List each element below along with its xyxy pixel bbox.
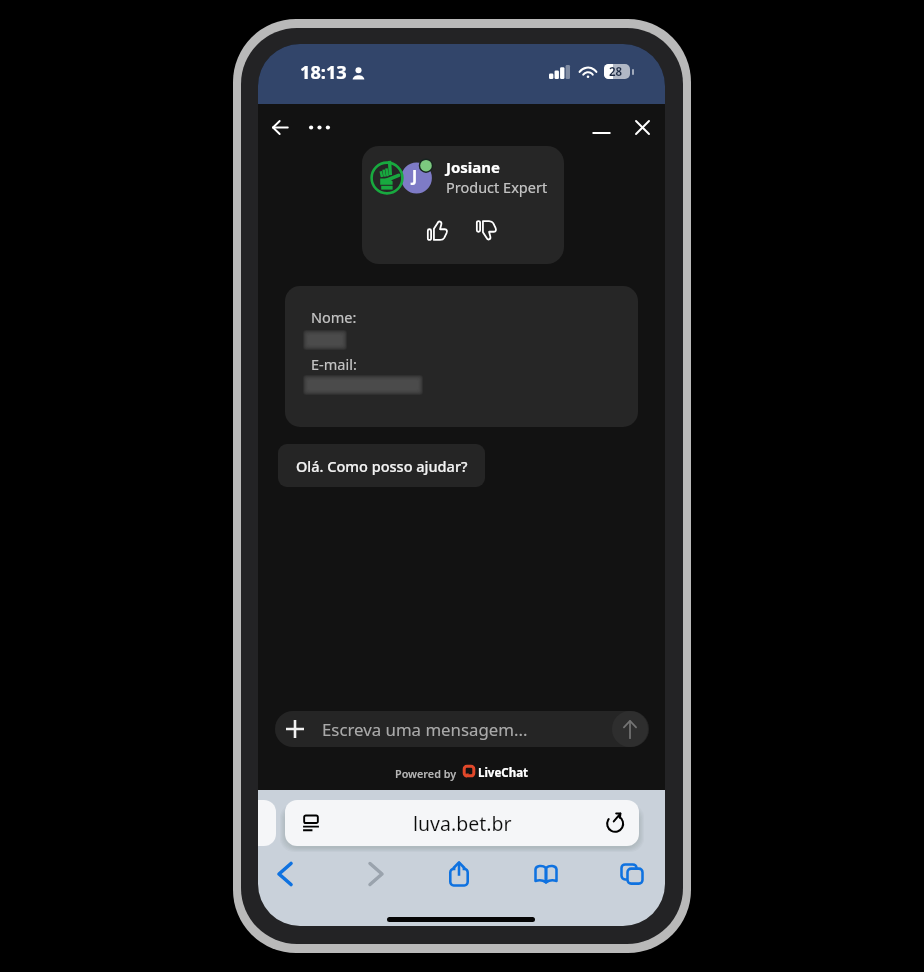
staticText: E-mail: — [311, 354, 357, 374]
staticText: luva.bet.br — [413, 810, 512, 837]
button[interactable]: Thumbs down — [471, 215, 501, 245]
staticText: J — [412, 165, 418, 186]
staticText: Powered by — [395, 766, 457, 781]
button[interactable]: Escreva uma mensagem... — [275, 711, 649, 747]
button[interactable]: Send message — [612, 711, 648, 747]
button[interactable]: More options — [301, 109, 337, 145]
button[interactable]: Page settings — [297, 809, 325, 837]
staticText: Nome: — [311, 307, 357, 327]
button[interactable]: Reload page — [601, 809, 629, 837]
button[interactable]: J — [362, 146, 564, 264]
button[interactable]: Back — [268, 857, 302, 891]
staticText: Olá. Como posso ajudar? — [296, 456, 468, 476]
button[interactable]: Minimize — [583, 115, 619, 151]
button[interactable]: Tabs — [615, 857, 649, 891]
staticText: Product Expert — [446, 177, 548, 197]
button[interactable]: Close — [624, 109, 660, 145]
button[interactable]: Back — [262, 109, 298, 145]
button[interactable]: Page settings — [285, 800, 639, 846]
staticText: 28 — [609, 64, 623, 79]
button[interactable]: Share — [442, 857, 476, 891]
button[interactable]: Forward — [359, 857, 393, 891]
staticText: LiveChat — [478, 765, 529, 781]
staticText: 18:13 — [300, 60, 347, 85]
staticText: Josiane — [446, 157, 501, 177]
button[interactable]: Thumbs up — [422, 215, 452, 245]
staticText: Escreva uma mensagem... — [322, 718, 528, 741]
button[interactable]: Bookmarks — [529, 857, 563, 891]
